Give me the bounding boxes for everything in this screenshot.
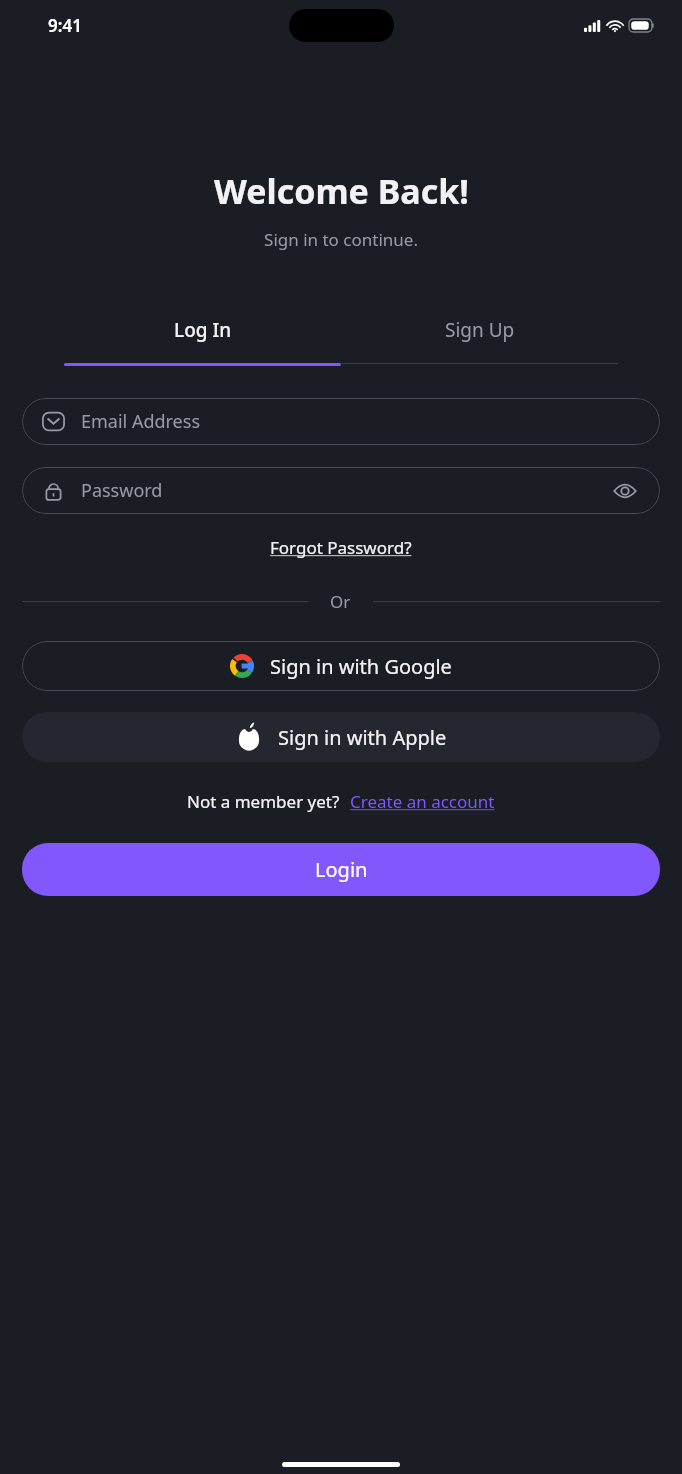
button[interactable]: Show password	[610, 476, 640, 506]
button[interactable]: Password	[22, 467, 660, 514]
staticText: Email Address	[81, 409, 640, 434]
staticText: Sign in with Google	[270, 653, 452, 680]
button[interactable]: Create an account	[350, 790, 495, 813]
button[interactable]: Sign in with Google	[22, 641, 660, 691]
button[interactable]: Sign in with Apple	[22, 712, 660, 762]
staticText: Forgot Password?	[270, 536, 412, 559]
staticText: 9:41	[48, 14, 82, 37]
staticText: Password	[81, 478, 610, 503]
staticText: Sign in to continue.	[264, 228, 418, 251]
button[interactable]: Forgot Password?	[262, 532, 420, 563]
button[interactable]: Email Address	[22, 398, 660, 445]
staticText: Login	[315, 856, 368, 883]
button[interactable]: Log In	[64, 309, 341, 351]
staticText: Create an account	[350, 790, 495, 813]
staticText: Welcome Back!	[214, 168, 469, 214]
staticText: Log In	[174, 317, 232, 343]
button[interactable]: Sign Up	[341, 309, 618, 351]
staticText: Or	[330, 590, 351, 613]
staticText: Sign in with Apple	[278, 724, 447, 751]
staticText: Not a member yet?	[187, 790, 340, 813]
button[interactable]: Login	[22, 843, 660, 896]
staticText: Sign Up	[445, 317, 515, 343]
